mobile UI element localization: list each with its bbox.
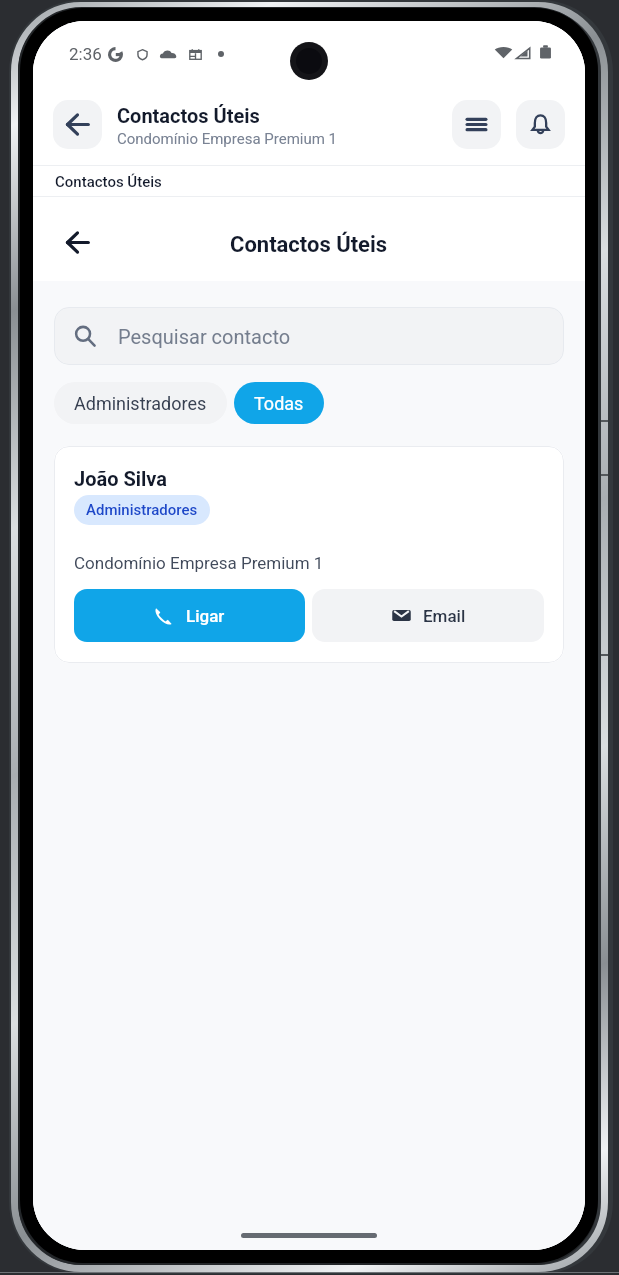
staticText: Contactos Úteis — [230, 232, 388, 258]
staticText: Ligar — [186, 606, 225, 626]
staticText: Administradores — [86, 501, 198, 519]
staticText: Contactos Úteis — [55, 173, 162, 191]
staticText: Todas — [254, 393, 304, 414]
staticText: Pesquisar contacto — [118, 325, 291, 348]
button[interactable]: Pesquisar contacto — [54, 307, 564, 365]
button[interactable]: Notifications — [516, 100, 565, 149]
button[interactable]: Todas — [234, 382, 324, 424]
staticText: Contactos Úteis — [117, 104, 260, 127]
button[interactable]: Administradores — [54, 382, 227, 424]
staticText: João Silva — [74, 467, 168, 490]
button[interactable]: Email — [312, 589, 544, 642]
staticText: 2:36 — [69, 44, 102, 64]
staticText: Condomínio Empresa Premium 1 — [117, 130, 338, 148]
button[interactable]: Menu — [452, 100, 501, 149]
button[interactable]: Back — [53, 100, 102, 149]
button[interactable]: Back — [55, 220, 99, 264]
staticText: Email — [423, 606, 466, 626]
button[interactable]: Ligar — [74, 589, 305, 642]
staticText: Administradores — [74, 393, 207, 414]
staticText: Condomínio Empresa Premium 1 — [74, 553, 324, 573]
